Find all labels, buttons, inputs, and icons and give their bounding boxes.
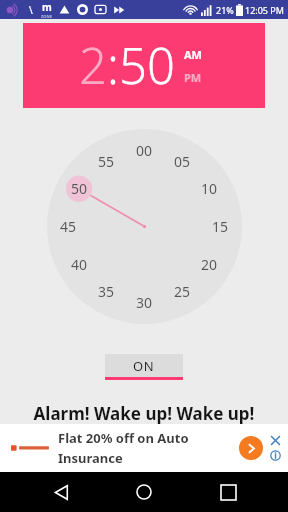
staticText: ZONE: [41, 14, 52, 19]
staticText: Insurance: [58, 449, 123, 467]
button[interactable]: Back: [38, 472, 84, 512]
staticText: Alarm! Wake up! Wake up!: [0, 402, 288, 425]
staticText: 35: [98, 282, 115, 301]
button[interactable]: Ad info: [270, 450, 281, 461]
staticText: 45: [60, 217, 77, 236]
button[interactable]: Minute picker: [47, 129, 242, 324]
staticText: ON: [133, 357, 155, 375]
staticText: 40: [71, 255, 88, 274]
button[interactable]: PM: [184, 70, 202, 85]
staticText: 55: [98, 152, 115, 171]
button[interactable]: 2: [23, 23, 265, 108]
button[interactable]: Close ad: [270, 435, 281, 446]
button[interactable]: Recent apps: [205, 472, 251, 512]
staticText: 10: [201, 179, 218, 198]
button[interactable]: ON: [105, 354, 183, 380]
staticText: \: [29, 3, 33, 17]
staticText: m: [42, 0, 52, 14]
staticText: 15: [212, 217, 229, 236]
button[interactable]: Home: [121, 472, 167, 512]
staticText: 50: [71, 179, 88, 198]
staticText: 00: [136, 141, 153, 160]
staticText: 20: [201, 255, 218, 274]
staticText: 12:05 PM: [245, 4, 284, 16]
button[interactable]: Open ad: [239, 436, 263, 460]
staticText: 21%: [216, 4, 234, 16]
button[interactable]: AM: [184, 47, 202, 62]
staticText: 30: [136, 293, 153, 312]
staticText: 05: [174, 152, 191, 171]
staticText: 25: [174, 282, 191, 301]
button[interactable]: 50: [119, 32, 175, 99]
button[interactable]: 2: [79, 32, 107, 99]
staticText: :: [107, 32, 119, 99]
staticText: Flat 20% off on Auto: [58, 429, 189, 447]
